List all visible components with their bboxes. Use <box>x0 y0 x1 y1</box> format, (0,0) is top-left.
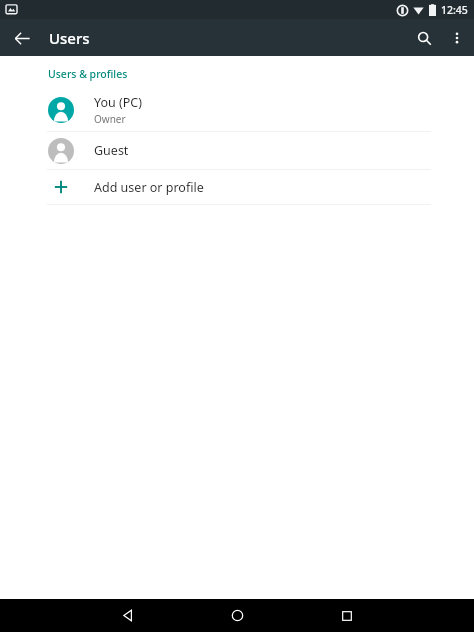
button[interactable]: Add user or profile <box>0 170 474 204</box>
staticText: Guest <box>94 142 129 159</box>
staticText: Add user or profile <box>94 179 204 196</box>
staticText: Owner <box>94 112 126 126</box>
staticText: You (PC) <box>94 94 142 111</box>
button[interactable]: Navigate up <box>6 22 38 54</box>
button[interactable]: More options <box>442 23 472 53</box>
button[interactable]: You (PC) <box>0 88 474 131</box>
button[interactable]: Back <box>72 599 182 632</box>
button[interactable]: Recent apps <box>292 599 402 632</box>
button[interactable]: Search <box>406 20 442 56</box>
button[interactable]: Guest <box>0 132 474 169</box>
staticText: 12:45 <box>441 3 468 17</box>
button[interactable]: Home <box>182 599 292 632</box>
staticText: Users <box>49 28 90 48</box>
staticText: Users & profiles <box>48 67 128 81</box>
